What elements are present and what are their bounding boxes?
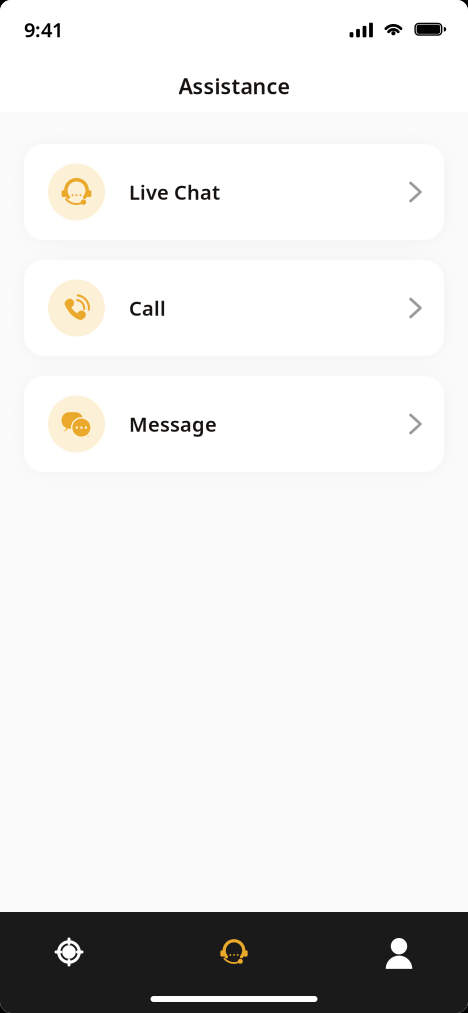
button[interactable]: Assistance [206, 927, 262, 977]
staticText: 9:41 [24, 16, 63, 43]
button[interactable]: Live Chat [24, 144, 444, 240]
staticText: Call [129, 295, 166, 321]
button[interactable]: Call [24, 260, 444, 356]
staticText: Message [129, 411, 217, 437]
button[interactable]: Locations [41, 927, 97, 977]
button[interactable]: Profile [371, 927, 427, 977]
button[interactable]: Message [24, 376, 444, 472]
staticText: Assistance [178, 72, 289, 100]
staticText: Live Chat [129, 179, 220, 205]
